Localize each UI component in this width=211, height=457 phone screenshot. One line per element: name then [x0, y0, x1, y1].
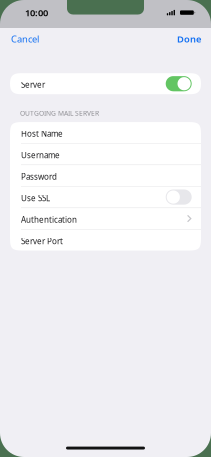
button[interactable]: Use SSL — [10, 187, 201, 208]
button[interactable]: Cancel — [11, 29, 39, 49]
staticText: Done — [177, 33, 201, 45]
staticText: Server Port — [21, 236, 63, 246]
button[interactable]: Username — [10, 144, 201, 165]
button[interactable]: Toggle off — [166, 189, 192, 205]
button[interactable]: Host Name — [10, 122, 201, 143]
staticText: Username — [21, 150, 60, 160]
button[interactable]: Password — [10, 165, 201, 186]
staticText: Password — [21, 171, 57, 182]
button[interactable]: Done — [177, 29, 201, 49]
staticText: Use SSL — [21, 193, 50, 203]
staticText: Server — [21, 79, 45, 90]
staticText: Cancel — [11, 33, 39, 45]
button[interactable]: Toggle on — [166, 76, 192, 91]
button[interactable]: Server — [10, 73, 201, 94]
button[interactable]: Server Port — [10, 230, 201, 251]
staticText: OUTGOING MAIL SERVER — [20, 109, 99, 118]
staticText: Authentication — [21, 214, 77, 225]
button[interactable]: Authentication — [10, 208, 201, 229]
staticText: Host Name — [21, 128, 63, 139]
staticText: 10:00 — [25, 6, 48, 19]
